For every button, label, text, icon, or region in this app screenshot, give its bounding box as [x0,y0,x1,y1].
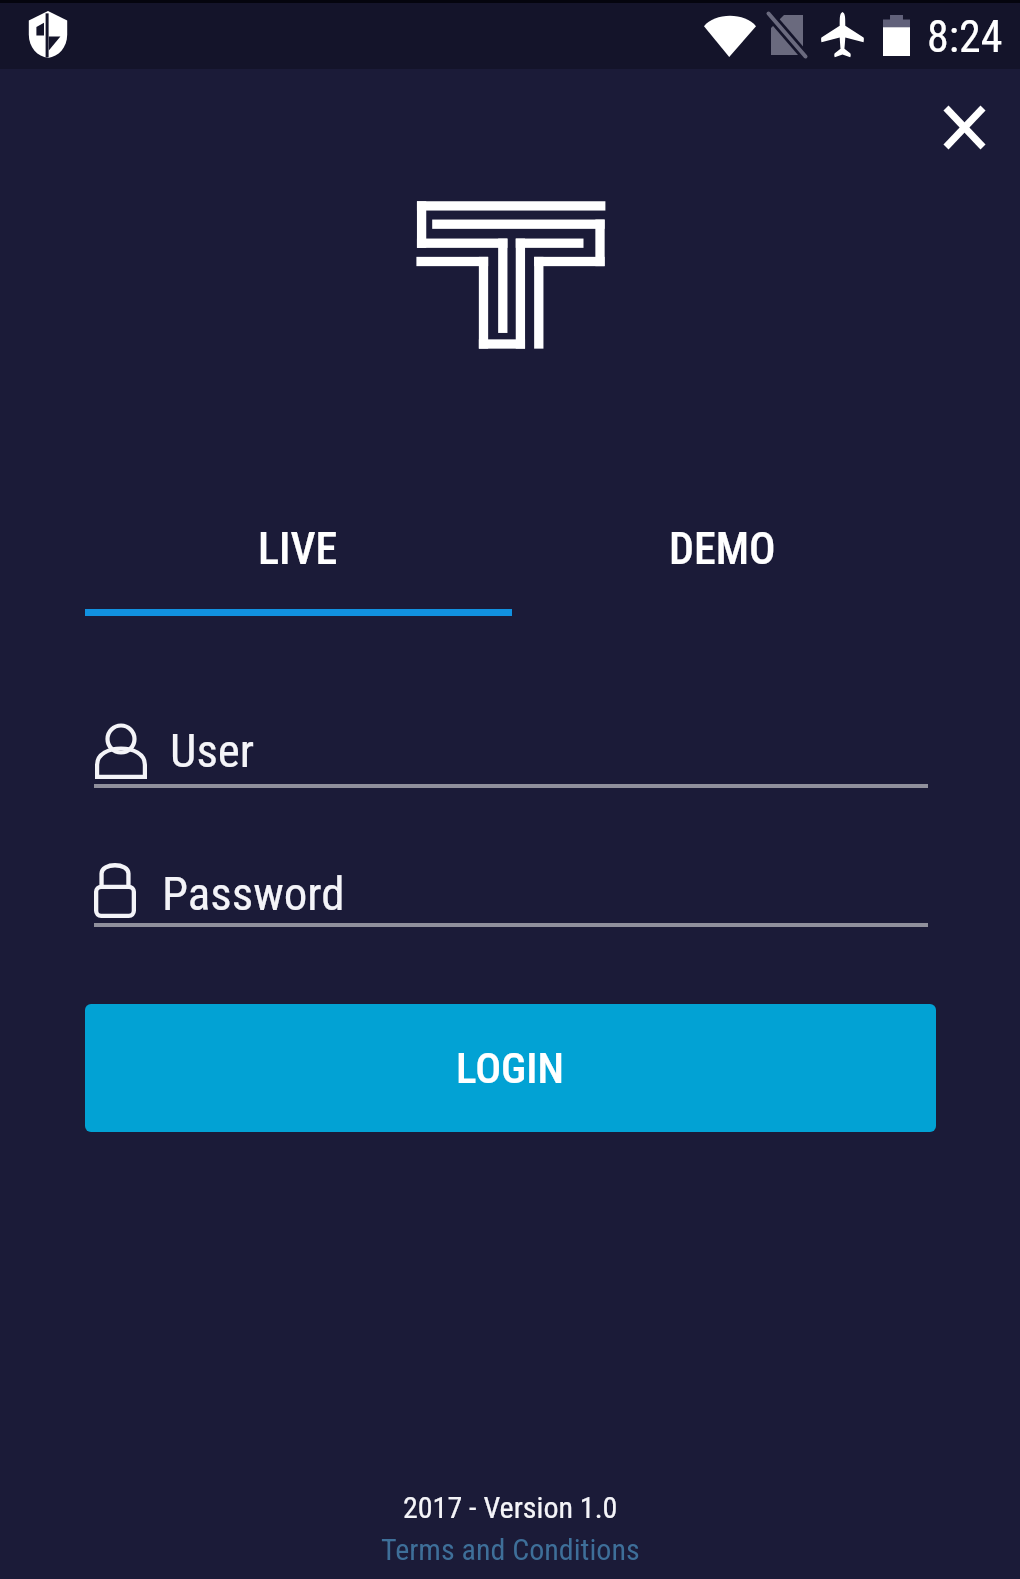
button[interactable]: LIVE [85,523,510,587]
button[interactable]: Close [921,84,1007,170]
button[interactable]: Password [94,852,928,930]
staticText: LIVE [258,523,338,575]
button[interactable]: User [94,714,928,792]
button[interactable]: LOGIN [85,1004,936,1132]
staticText: 8:24 [927,11,1003,63]
staticText: LOGIN [456,1043,565,1093]
staticText: Terms and Conditions [381,1532,640,1567]
staticText: DEMO [669,523,776,575]
button[interactable]: DEMO [510,523,935,587]
button[interactable]: Terms and Conditions [381,1532,640,1567]
staticText: User [170,723,255,778]
staticText: Password [162,866,345,921]
staticText: 2017 - Version 1.0 [403,1490,618,1525]
